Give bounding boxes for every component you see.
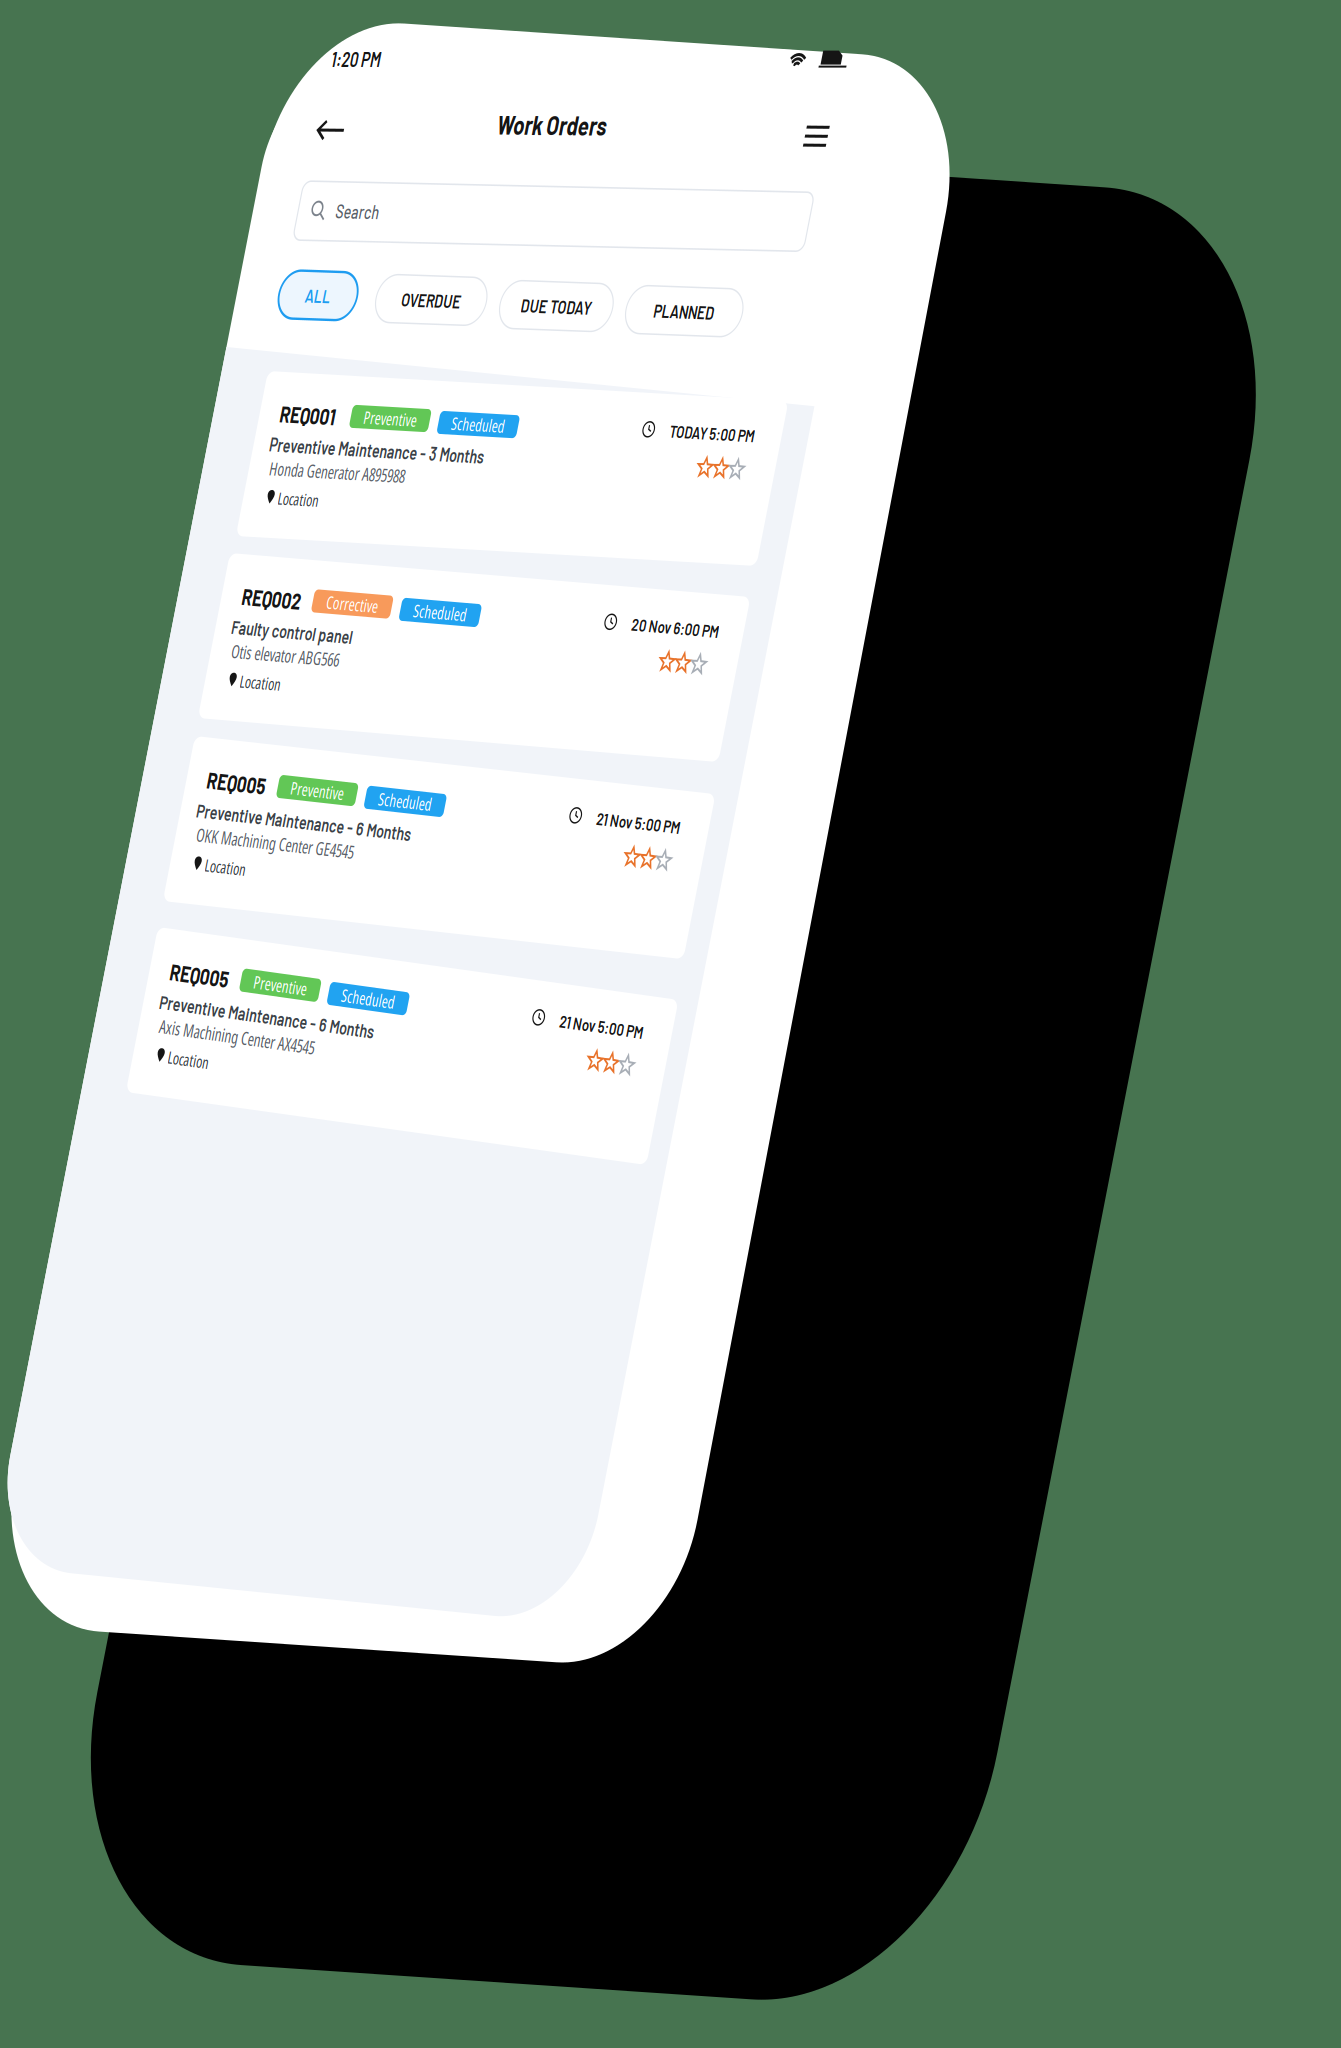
staticText: REQ001	[295, 398, 369, 426]
staticText: Preventive Maintenance - 6 Months	[179, 988, 465, 1010]
staticText: Preventive Maintenance - 6 Months	[216, 797, 502, 819]
staticText: 21 Nov 5:00 PM	[703, 953, 814, 973]
button[interactable]: Back	[320, 119, 358, 141]
button[interactable]: OVERDUE	[381, 274, 528, 322]
button[interactable]: PLANNED	[631, 285, 786, 333]
staticText: REQ002	[257, 580, 336, 608]
button[interactable]: REQ002	[230, 553, 924, 718]
staticText: REQ005	[185, 954, 263, 982]
button[interactable]: Search	[304, 181, 985, 240]
staticText: Location	[204, 1041, 258, 1063]
staticText: ALL	[319, 283, 353, 305]
button[interactable]: ALL	[284, 270, 388, 318]
staticText: Location	[314, 485, 368, 507]
staticText: 21 Nov 5:00 PM	[740, 762, 851, 782]
staticText: Scheduled	[450, 765, 521, 789]
staticText: TODAY 5:00 PM	[813, 397, 926, 417]
staticText: Preventive	[296, 955, 367, 979]
button[interactable]: REQ005	[195, 736, 889, 901]
staticText: Location	[276, 667, 330, 689]
staticText: Search	[354, 199, 412, 221]
staticText: Faulty control panel	[251, 614, 412, 636]
button[interactable]: REQ005	[158, 927, 852, 1092]
staticText: DUE TODAY	[533, 293, 627, 315]
staticText: Preventive	[406, 399, 477, 423]
button[interactable]: DUE TODAY	[505, 280, 655, 328]
staticText: OKK Machining Center GE4545	[222, 820, 432, 844]
staticText: Preventive	[333, 764, 404, 788]
staticText: Otis elevator ABG566	[257, 637, 401, 661]
staticText: 1:20 PM	[334, 47, 400, 71]
staticText: 20 Nov 6:00 PM	[775, 579, 891, 599]
button[interactable]: REQ001	[268, 371, 962, 536]
staticText: Location	[241, 850, 295, 872]
staticText: OVERDUE	[415, 287, 494, 309]
staticText: Corrective	[369, 581, 438, 605]
staticText: Scheduled	[413, 956, 484, 980]
staticText: Preventive Maintenance - 3 Months	[289, 432, 575, 454]
staticText: REQ005	[222, 763, 300, 791]
staticText: Honda Generator A895988	[295, 455, 476, 479]
staticText: Work Orders	[560, 106, 706, 138]
staticText: Axis Machining Center AX4545	[185, 1011, 392, 1035]
staticText: PLANNED	[668, 298, 749, 320]
